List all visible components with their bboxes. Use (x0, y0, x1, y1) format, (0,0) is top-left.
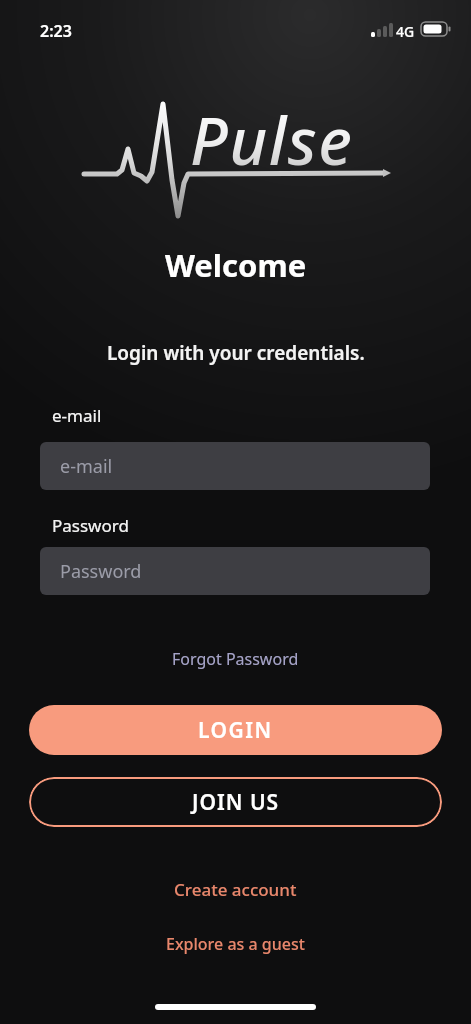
button[interactable]: LOGIN (29, 705, 442, 755)
staticText: 4G (396, 22, 415, 41)
staticText: e-mail (60, 454, 113, 479)
staticText: JOIN US (192, 788, 280, 817)
staticText: LOGIN (198, 716, 273, 745)
staticText: Password (52, 514, 129, 537)
button[interactable]: Password (40, 547, 430, 595)
staticText: Password (60, 559, 142, 584)
button[interactable]: Create account (174, 878, 297, 901)
button[interactable]: Explore as a guest (166, 933, 305, 955)
button[interactable]: JOIN US (29, 777, 442, 827)
staticText: e-mail (52, 404, 102, 427)
button[interactable]: Forgot Password (172, 648, 299, 670)
staticText: Login with your credentials. (107, 340, 365, 366)
button[interactable]: e-mail (40, 442, 430, 490)
staticText: 2:23 (40, 20, 72, 42)
staticText: Welcome (165, 244, 307, 284)
staticText: Pulse (190, 96, 354, 185)
